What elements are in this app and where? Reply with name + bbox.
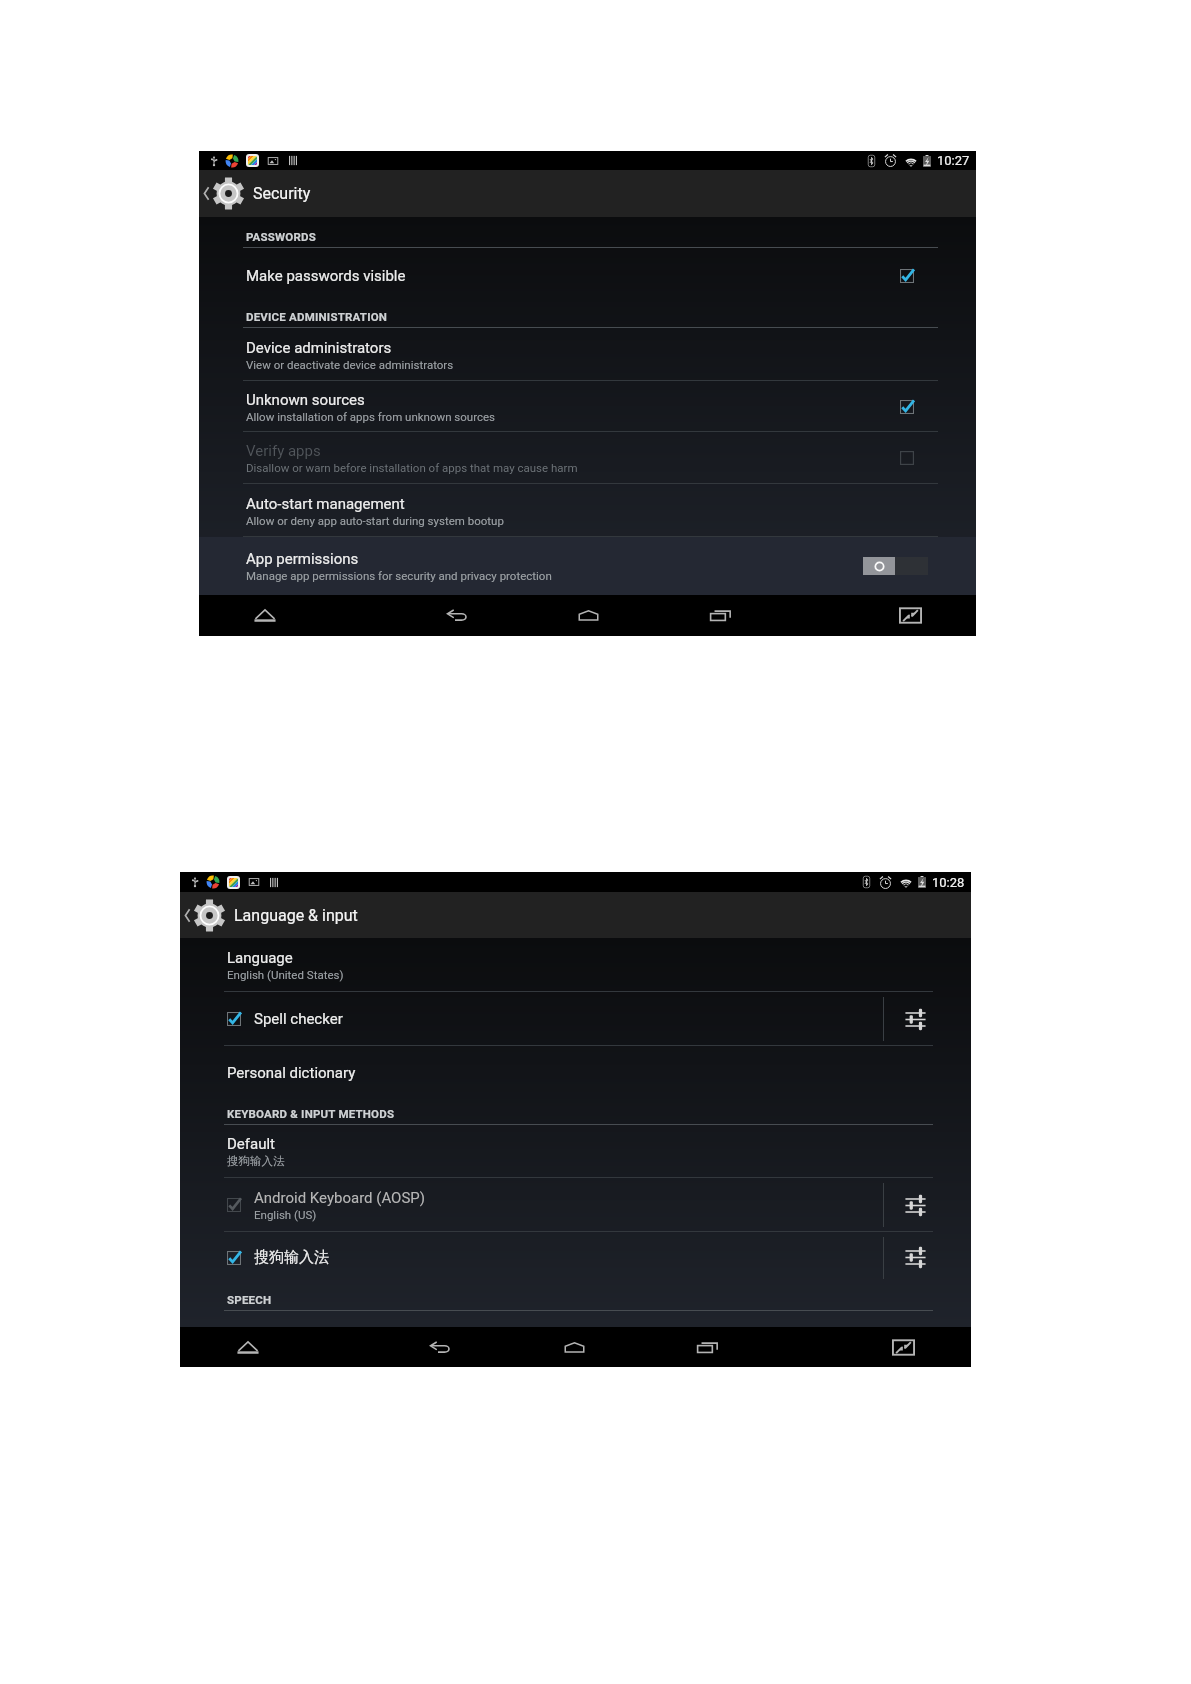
button[interactable]: Settings [884,992,971,1046]
button[interactable]: Recent apps [689,595,751,636]
button[interactable]: Resize screen [872,1327,934,1367]
staticText: DEVICE ADMINISTRATION [246,310,388,323]
button[interactable]: Spell checker [180,992,883,1046]
staticText: 10:28 [932,875,965,890]
button[interactable]: Resize screen [879,595,941,636]
button[interactable]: Device administrators [199,328,976,381]
button[interactable]: App permissions [199,537,976,595]
button[interactable]: Home [543,1327,605,1367]
staticText: Allow or deny app auto-start during syst… [246,514,504,527]
staticText: View or deactivate device administrators [246,358,454,371]
staticText: Spell checker [254,1010,343,1028]
button[interactable] [863,557,928,575]
staticText: Language & input [234,906,358,925]
staticText: Allow installation of apps from unknown … [246,410,496,423]
button[interactable]: Default [180,1125,971,1178]
button[interactable]: 搜狗输入法 [180,1232,883,1283]
staticText: English (United States) [227,968,344,981]
staticText: Security [253,184,311,203]
staticText: 搜狗输入法 [254,1248,329,1267]
button[interactable]: Security [199,170,976,217]
button[interactable]: Recent apps [676,1327,738,1367]
staticText: English (US) [254,1208,317,1221]
staticText: Language [227,949,293,967]
staticText: App permissions [246,550,359,568]
staticText: KEYBOARD & INPUT METHODS [227,1107,395,1120]
button[interactable]: Language & input [180,892,971,938]
staticText: SPEECH [227,1293,272,1306]
button[interactable]: Settings [884,1232,971,1283]
button[interactable]: Make passwords visible [199,248,976,304]
staticText: PASSWORDS [246,230,316,243]
button[interactable]: Language [180,938,971,992]
staticText: Device administrators [246,339,392,357]
staticText: Android Keyboard (AOSP) [254,1189,426,1207]
button[interactable]: Hide navigation bar [234,595,296,636]
button[interactable]: Back [426,595,488,636]
staticText: Manage app permissions for security and … [246,569,552,582]
button[interactable]: Android Keyboard (AOSP) [180,1178,883,1232]
staticText: 搜狗输入法 [227,1154,285,1168]
staticText: Personal dictionary [227,1064,356,1082]
staticText: Verify apps [246,442,321,460]
staticText: Default [227,1135,275,1153]
button[interactable]: Unknown sources [199,381,976,432]
button[interactable]: Settings [884,1178,971,1232]
button[interactable]: Auto-start management [199,484,976,537]
staticText: Disallow or warn before installation of … [246,461,578,474]
button[interactable]: Hide navigation bar [217,1327,279,1367]
staticText: Auto-start management [246,495,405,513]
staticText: Make passwords visible [246,267,406,285]
button[interactable]: Home [557,595,619,636]
button[interactable]: Back [409,1327,471,1367]
button[interactable]: Verify apps [199,432,976,484]
button[interactable]: Personal dictionary [180,1046,971,1099]
staticText: Unknown sources [246,391,365,409]
staticText: 10:27 [937,153,970,168]
